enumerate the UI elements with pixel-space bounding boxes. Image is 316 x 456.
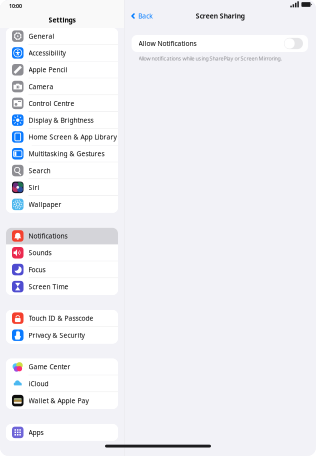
staticText: Display & Brightness bbox=[28, 116, 93, 125]
button[interactable]: Privacy & Security bbox=[6, 327, 118, 344]
button[interactable]: Wallpaper bbox=[6, 196, 118, 213]
staticText: Camera bbox=[28, 82, 53, 91]
button[interactable]: Touch ID & Passcode bbox=[6, 310, 118, 327]
staticText: Allow Notifications bbox=[139, 39, 197, 48]
staticText: Notifications bbox=[28, 231, 67, 240]
button[interactable]: Control Centre bbox=[6, 95, 118, 112]
button[interactable]: Search bbox=[6, 162, 118, 179]
staticText: Game Center bbox=[28, 362, 70, 371]
staticText: Focus bbox=[28, 265, 45, 274]
staticText: iCloud bbox=[28, 379, 48, 388]
staticText: Apps bbox=[28, 428, 43, 437]
staticText: Screen Sharing bbox=[196, 12, 245, 20]
button[interactable]: Display & Brightness bbox=[6, 112, 118, 129]
staticText: Allow notifications while using SharePla… bbox=[139, 55, 282, 62]
button[interactable]: Allow Notifications bbox=[284, 38, 303, 49]
staticText: Settings bbox=[48, 16, 75, 24]
button[interactable]: iCloud bbox=[6, 375, 118, 392]
staticText: General bbox=[28, 32, 54, 41]
staticText: Siri bbox=[28, 183, 39, 192]
button[interactable]: Screen Time bbox=[6, 278, 118, 295]
button[interactable]: Camera bbox=[6, 78, 118, 95]
staticText: Screen Time bbox=[28, 282, 68, 291]
button[interactable]: Accessibility bbox=[6, 45, 118, 62]
button[interactable]: Multitasking & Gestures bbox=[6, 146, 118, 162]
staticText: Apple Pencil bbox=[28, 65, 67, 74]
staticText: Control Centre bbox=[28, 99, 74, 108]
staticText: Sounds bbox=[28, 248, 51, 257]
staticText: Wallet & Apple Pay bbox=[28, 396, 88, 405]
staticText: Touch ID & Passcode bbox=[28, 314, 93, 323]
button[interactable]: Apple Pencil bbox=[6, 62, 118, 78]
button[interactable]: Back bbox=[128, 9, 155, 23]
button[interactable]: General bbox=[6, 28, 118, 45]
staticText: Back bbox=[138, 12, 153, 20]
button[interactable]: Notifications bbox=[6, 228, 118, 245]
staticText: Home Screen & App Library bbox=[28, 132, 116, 141]
button[interactable]: Siri bbox=[6, 179, 118, 196]
button[interactable]: Home Screen & App Library bbox=[6, 129, 118, 146]
staticText: Wallpaper bbox=[28, 200, 61, 209]
staticText: Privacy & Security bbox=[28, 331, 84, 340]
button[interactable]: Apps bbox=[6, 424, 118, 441]
button[interactable]: Focus bbox=[6, 261, 118, 278]
button[interactable]: Game Center bbox=[6, 359, 118, 375]
staticText: Multitasking & Gestures bbox=[28, 149, 104, 158]
staticText: Accessibility bbox=[28, 48, 65, 57]
staticText: 10:00 bbox=[9, 2, 22, 10]
staticText: Search bbox=[28, 166, 50, 175]
button[interactable]: Wallet & Apple Pay bbox=[6, 392, 118, 409]
button[interactable]: Sounds bbox=[6, 245, 118, 261]
